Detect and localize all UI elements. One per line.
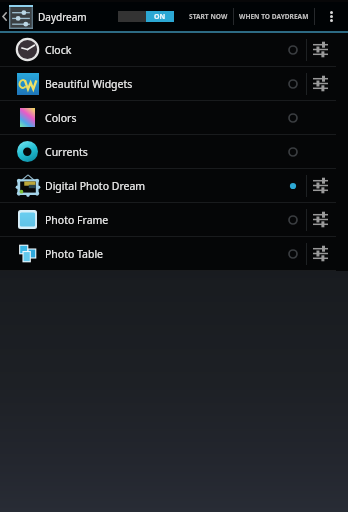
button[interactable]: Settings for Digital Photo Dream — [307, 169, 334, 202]
staticText: Beautiful Widgets — [45, 77, 133, 91]
staticText: Colors — [45, 111, 77, 125]
staticText: Photo Table — [45, 247, 104, 261]
button[interactable]: More options — [315, 2, 348, 31]
button[interactable]: Photo Frame — [0, 203, 348, 236]
button[interactable]: Clock — [0, 33, 348, 66]
staticText: Daydream — [38, 10, 87, 24]
staticText: Currents — [45, 145, 88, 159]
button[interactable]: Settings for Clock — [307, 33, 334, 66]
button[interactable]: WHEN TO DAYDREAM — [234, 2, 314, 31]
staticText: Digital Photo Dream — [45, 179, 146, 193]
button[interactable]: Navigate up — [0, 2, 9, 31]
staticText: START NOW — [189, 12, 228, 21]
button[interactable]: Digital Photo Dream — [0, 169, 348, 202]
button[interactable]: Settings for Photo Frame — [307, 203, 334, 236]
button[interactable]: Colors — [0, 101, 348, 134]
button[interactable]: Beautiful Widgets — [0, 67, 348, 100]
staticText: WHEN TO DAYDREAM — [239, 12, 309, 21]
button[interactable]: Settings for Photo Table — [307, 237, 334, 270]
button[interactable]: Photo Table — [0, 237, 348, 270]
staticText: Photo Frame — [45, 213, 109, 227]
staticText: ON — [154, 12, 166, 22]
button[interactable]: Settings for Beautiful Widgets — [307, 67, 334, 100]
button[interactable]: Currents — [0, 135, 348, 168]
staticText: Clock — [45, 43, 72, 57]
button[interactable]: ON — [118, 11, 174, 22]
button[interactable]: START NOW — [184, 2, 233, 31]
